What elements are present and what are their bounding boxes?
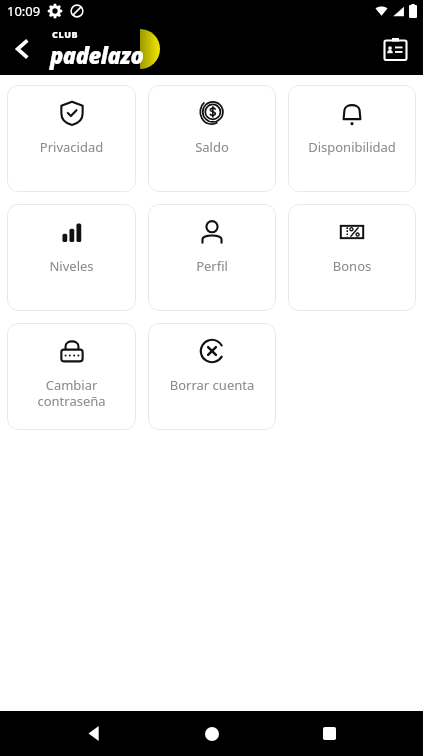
button[interactable]: Disponibilidad <box>288 85 416 192</box>
staticText: Cambiar contraseña <box>7 376 136 409</box>
button[interactable]: Perfil <box>148 204 276 311</box>
staticText: Perfil <box>148 257 276 275</box>
button[interactable]: Cambiar contraseña <box>7 323 136 430</box>
button[interactable]: Privacidad <box>7 85 136 192</box>
staticText: 10:09 <box>7 2 41 20</box>
button[interactable]: Back <box>70 711 118 756</box>
staticText: Privacidad <box>7 138 136 156</box>
staticText: Saldo <box>148 138 276 156</box>
button[interactable]: Borrar cuenta <box>148 323 276 430</box>
button[interactable]: Membership card <box>373 27 417 71</box>
button[interactable]: Recents <box>305 711 353 756</box>
button[interactable]: Bonos <box>288 204 416 311</box>
button[interactable]: Saldo <box>148 85 276 192</box>
staticText: Disponibilidad <box>288 138 416 156</box>
button[interactable]: Niveles <box>7 204 136 311</box>
staticText: Niveles <box>7 257 136 275</box>
staticText: padelazo <box>50 40 144 70</box>
staticText: Bonos <box>288 257 416 275</box>
staticText: Borrar cuenta <box>148 376 276 394</box>
button[interactable]: Back <box>0 27 44 71</box>
staticText: CLUB <box>52 28 79 40</box>
button[interactable]: Home <box>188 711 236 756</box>
